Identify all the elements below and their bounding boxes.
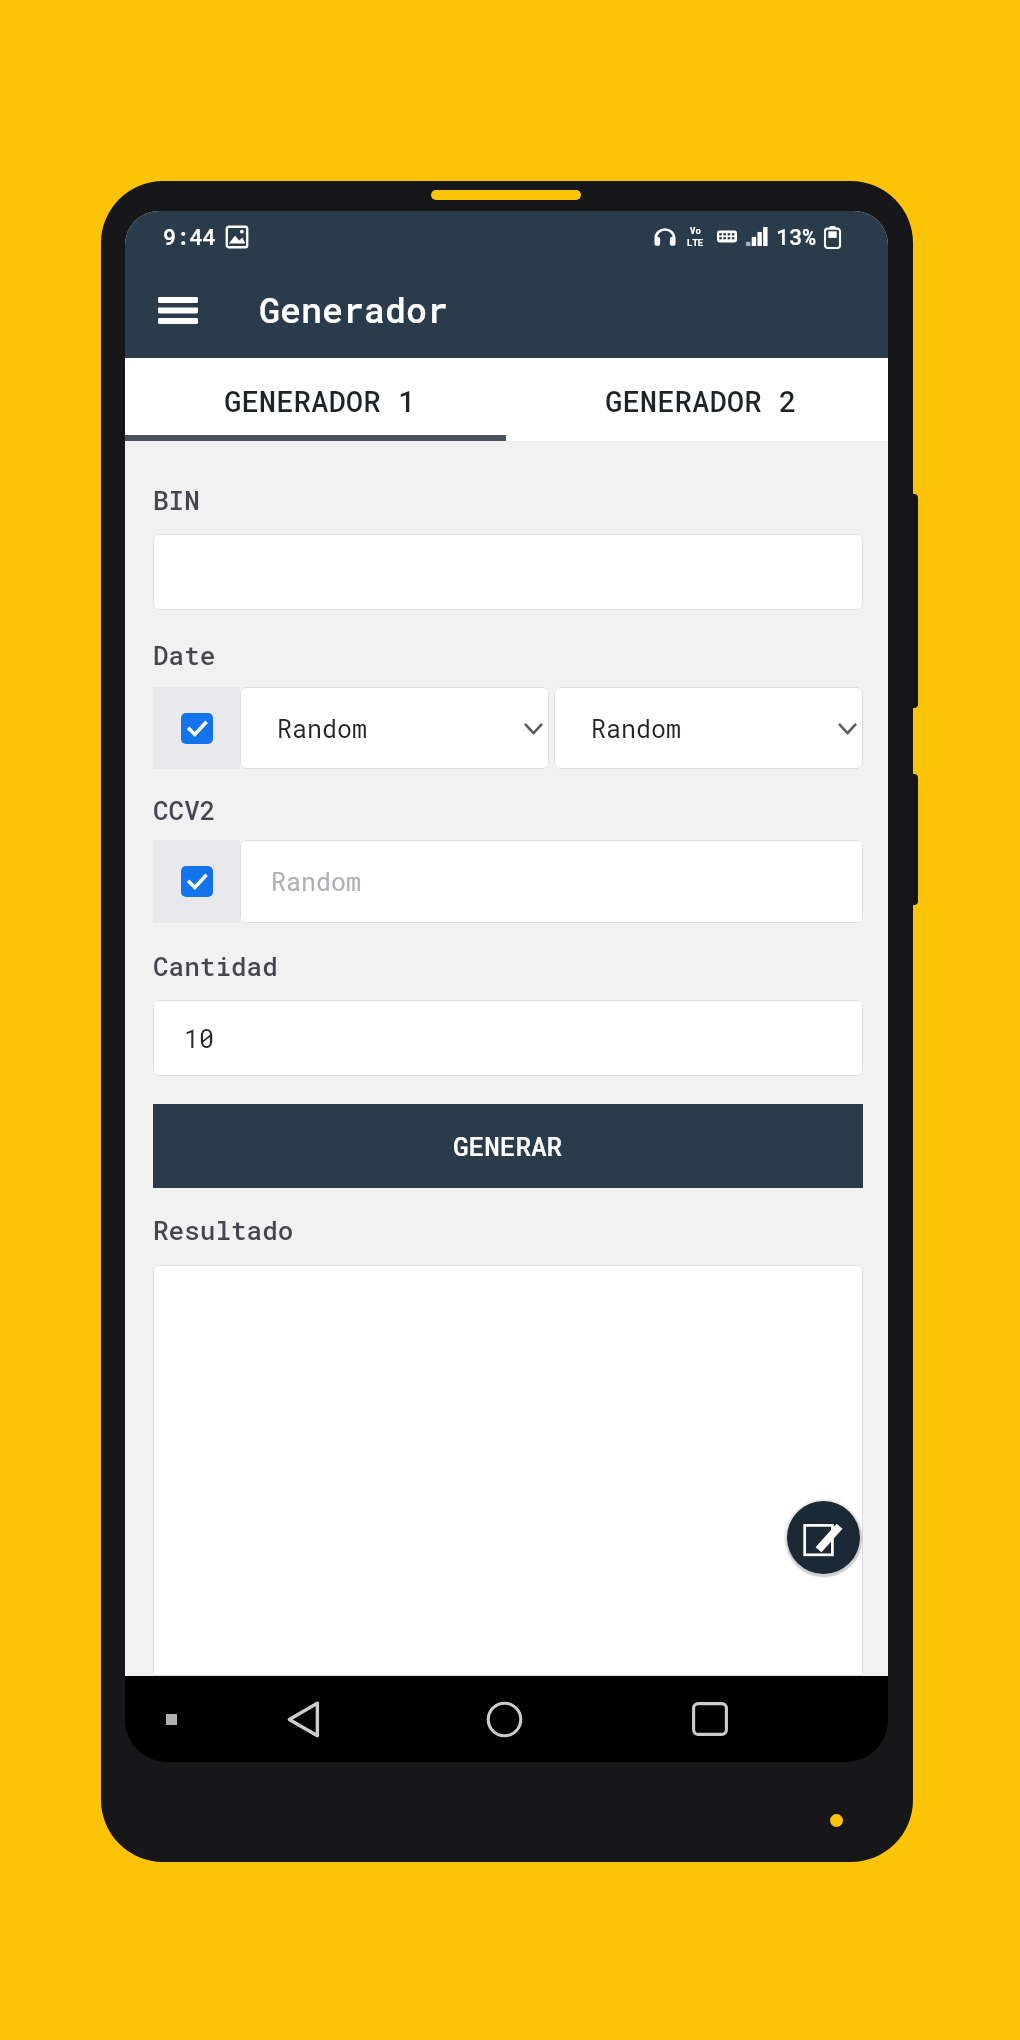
staticText: 13% bbox=[776, 222, 816, 251]
staticText: 10 bbox=[184, 1022, 215, 1055]
button[interactable]: Home bbox=[476, 1691, 532, 1747]
button[interactable]: Toggle random bbox=[153, 840, 240, 923]
staticText: Generador bbox=[259, 286, 449, 332]
staticText: Resultado bbox=[153, 1213, 294, 1247]
button[interactable]: Recent apps bbox=[682, 1691, 738, 1747]
staticText: GENERAR bbox=[453, 1129, 563, 1163]
button[interactable]: Random bbox=[240, 840, 863, 923]
button[interactable]: GENERADOR 1 bbox=[125, 358, 506, 441]
button[interactable] bbox=[153, 534, 863, 610]
button[interactable]: 10 bbox=[153, 1000, 863, 1076]
button[interactable]: Back bbox=[275, 1691, 331, 1747]
button[interactable]: GENERAR bbox=[153, 1104, 863, 1188]
staticText: Random bbox=[271, 865, 362, 898]
staticText: BIN bbox=[153, 483, 200, 517]
staticText: GENERADOR 1 bbox=[224, 382, 416, 420]
button[interactable]: Resultado bbox=[153, 1265, 863, 1676]
staticText: Random bbox=[277, 712, 368, 745]
staticText: Date bbox=[153, 638, 216, 672]
staticText: CCV2 bbox=[153, 793, 216, 827]
staticText: GENERADOR 2 bbox=[605, 382, 797, 420]
button[interactable]: Toggle random bbox=[153, 687, 240, 769]
button[interactable]: Random bbox=[240, 687, 549, 769]
staticText: LTE bbox=[687, 237, 704, 249]
staticText: 9:44 bbox=[163, 222, 216, 251]
staticText: Cantidad bbox=[153, 949, 278, 983]
button[interactable]: Edit result bbox=[787, 1501, 860, 1574]
button[interactable]: Open navigation menu bbox=[138, 271, 217, 350]
staticText: Vo bbox=[690, 225, 701, 237]
button[interactable]: Random bbox=[554, 687, 863, 769]
button[interactable]: GENERADOR 2 bbox=[506, 358, 888, 441]
staticText: Random bbox=[591, 712, 682, 745]
